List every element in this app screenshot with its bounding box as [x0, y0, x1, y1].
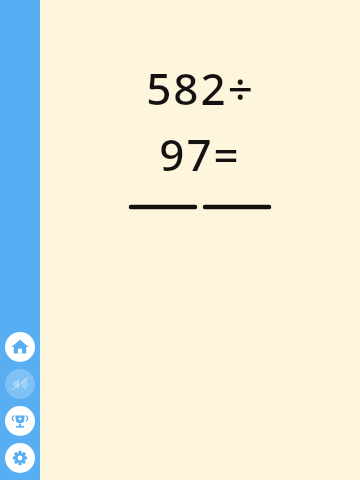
button[interactable]: Sound off — [5, 369, 35, 399]
button[interactable]: Achievements — [5, 406, 35, 436]
button[interactable]: Answer blank — [131, 200, 195, 214]
button[interactable]: Settings — [5, 443, 35, 473]
button[interactable]: Home — [5, 332, 35, 362]
button[interactable]: Answer blank — [205, 200, 269, 214]
staticText: 582÷ — [146, 58, 255, 118]
staticText: 97= — [159, 124, 241, 184]
